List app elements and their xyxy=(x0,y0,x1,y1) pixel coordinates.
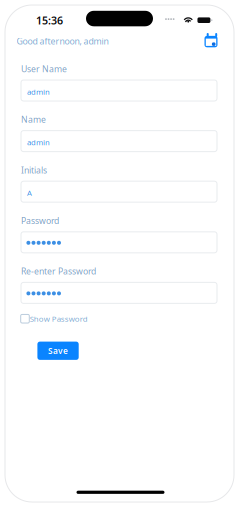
staticText: Good afternoon, admin xyxy=(16,35,108,47)
staticText: 15:36 xyxy=(36,13,63,27)
staticText: A xyxy=(27,188,32,198)
button[interactable]: Show Password xyxy=(0,0,88,324)
button[interactable]: Save xyxy=(0,0,79,360)
staticText: admin xyxy=(27,137,50,147)
staticText: Password xyxy=(21,215,59,226)
staticText: Re-enter Password xyxy=(21,265,96,277)
staticText: Name xyxy=(21,114,46,125)
staticText: Show Password xyxy=(30,313,88,324)
button[interactable]: Calendar xyxy=(0,0,218,47)
staticText: User Name xyxy=(21,63,67,75)
staticText: Initials xyxy=(21,164,47,176)
staticText: Save xyxy=(48,345,68,356)
staticText: admin xyxy=(27,87,50,97)
